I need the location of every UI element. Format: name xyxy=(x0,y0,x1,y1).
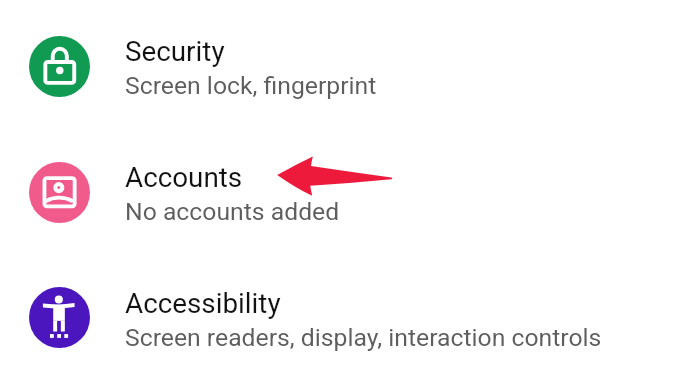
staticText: Security xyxy=(125,35,225,68)
button[interactable]: Accessibility xyxy=(0,279,680,356)
button[interactable]: Accounts xyxy=(0,154,680,231)
staticText: No accounts added xyxy=(125,197,340,226)
staticText: Accessibility xyxy=(125,287,281,320)
button[interactable]: Security xyxy=(0,28,680,105)
staticText: Accounts xyxy=(125,161,243,194)
staticText: Screen lock, fingerprint xyxy=(125,71,377,100)
staticText: Screen readers, display, interaction con… xyxy=(125,323,602,352)
